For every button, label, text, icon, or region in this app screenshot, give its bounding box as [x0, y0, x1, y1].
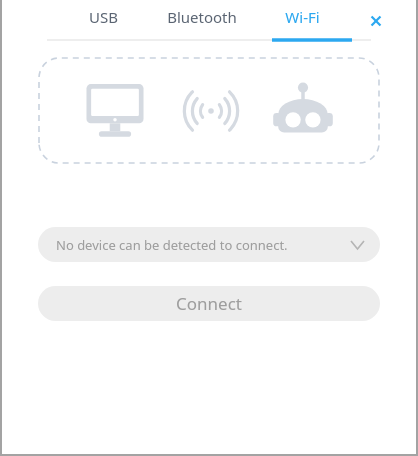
button[interactable]: Close: [360, 5, 392, 37]
button[interactable]: No device can be detected to connect.: [38, 227, 380, 262]
staticText: No device can be detected to connect.: [56, 236, 288, 254]
staticText: Wi-Fi: [285, 7, 320, 27]
button[interactable]: Wi-Fi: [262, 0, 342, 42]
staticText: Bluetooth: [167, 7, 237, 27]
button[interactable]: Bluetooth: [152, 0, 252, 42]
staticText: Connect: [176, 292, 242, 315]
button[interactable]: USB: [66, 0, 140, 42]
button[interactable]: Connect: [38, 286, 380, 321]
staticText: USB: [89, 7, 118, 27]
